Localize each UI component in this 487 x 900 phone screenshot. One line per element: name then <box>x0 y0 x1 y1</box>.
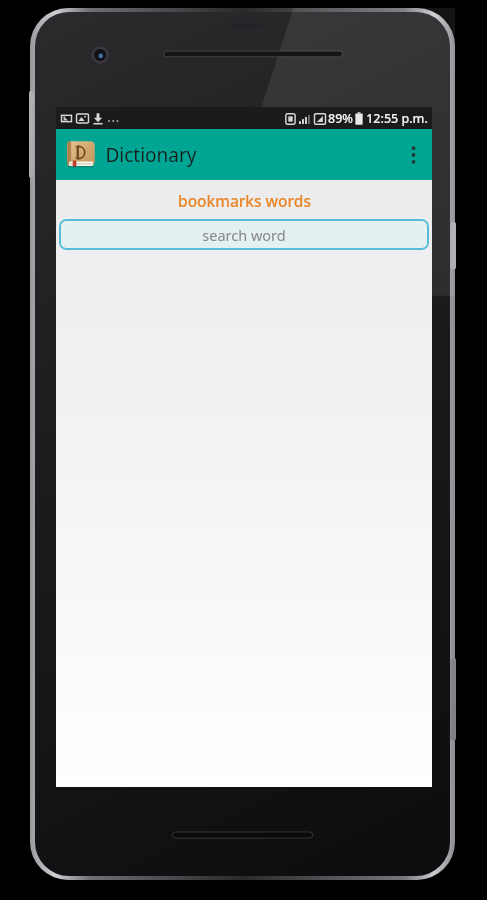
staticText: Dictionary <box>105 142 197 168</box>
button[interactable]: Dictionary app icon <box>65 139 97 171</box>
staticText: bookmarks words <box>178 190 311 211</box>
button[interactable]: search word <box>59 219 429 250</box>
staticText: 12:55 p.m. <box>366 110 428 127</box>
button[interactable]: More options <box>394 129 432 180</box>
staticText: 89% <box>328 110 353 127</box>
button[interactable]: bookmarks words <box>56 187 432 214</box>
staticText: search word <box>202 225 286 245</box>
